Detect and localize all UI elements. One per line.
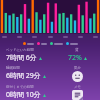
staticText: ベッドにいた時間: [6, 48, 34, 52]
staticText: 気分: [74, 66, 81, 70]
button[interactable]: Mood: [72, 71, 83, 82]
staticText: 7時間 6分: [6, 53, 37, 63]
staticText: 6時間 29分: [6, 71, 41, 81]
staticText: メモ: [74, 85, 81, 89]
staticText: 睡眠時間: [6, 66, 20, 70]
button[interactable]: Note: [72, 90, 83, 100]
staticText: 寝付くまでの時間: [6, 85, 34, 89]
button[interactable]: 睡眠時間: [6, 66, 94, 82]
staticText: 0時間 10分: [6, 90, 41, 100]
staticText: 質: [75, 48, 79, 52]
button[interactable]: 寝付くまでの時間: [6, 85, 94, 100]
button[interactable]: ベッドにいた時間: [6, 48, 94, 63]
staticText: 72%: [68, 53, 82, 63]
button[interactable]: Sleep stage chart: [0, 0, 100, 34]
